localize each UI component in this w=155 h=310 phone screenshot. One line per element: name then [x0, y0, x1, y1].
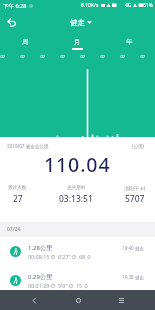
staticText: 4G: [125, 2, 132, 9]
staticText: 07/05: [20, 54, 25, 60]
button[interactable]: Home: [68, 290, 88, 310]
staticText: 19:40 健走: [122, 245, 145, 251]
staticText: 0.29公里: [28, 273, 52, 281]
staticText: 07/17: [80, 54, 85, 60]
button[interactable]: Back: [0, 11, 22, 33]
staticText: 6'27": [58, 253, 71, 260]
staticText: 年: [126, 38, 133, 46]
staticText: 月: [74, 38, 81, 46]
button[interactable]: Recents: [111, 290, 131, 310]
button[interactable]: 0.29公里: [0, 266, 155, 295]
staticText: 07/01: [0, 54, 5, 60]
staticText: 68: [79, 253, 86, 260]
staticText: 2019/07 健走总公里: [7, 143, 49, 149]
staticText: 下午 6:28: [3, 2, 27, 10]
button[interactable]: 年: [103, 33, 155, 52]
staticText: 00:08:15: [28, 253, 50, 260]
staticText: 消耗(千卡): [124, 185, 146, 191]
staticText: 周: [22, 38, 29, 46]
staticText: 健走: [70, 18, 85, 27]
staticText: 07/29: [140, 54, 145, 60]
staticText: 5707: [125, 193, 145, 205]
button[interactable]: Back: [24, 290, 44, 310]
button[interactable]: 月: [51, 33, 103, 52]
staticText: 累计次数: [8, 185, 27, 191]
staticText: 07/21: [100, 54, 105, 60]
staticText: 8.10K/s: [81, 2, 99, 9]
staticText: 03:13:51: [59, 193, 93, 205]
staticText: 110.04: [44, 151, 111, 178]
staticText: 总共用时: [67, 185, 86, 191]
staticText: 07/24: [7, 226, 21, 233]
staticText: 61%: [143, 2, 153, 9]
staticText: 5'0": [58, 282, 68, 289]
staticText: 27: [13, 193, 23, 205]
button[interactable]: 1.28公里: [0, 237, 155, 266]
staticText: 00:01:29: [28, 282, 50, 289]
staticText: 1.28公里: [28, 244, 52, 252]
staticText: 07/09: [40, 54, 45, 60]
staticText: (公里): [132, 143, 144, 149]
staticText: 19:38 健走: [122, 274, 145, 280]
staticText: 15: [76, 282, 83, 289]
staticText: 07/25: [120, 54, 125, 60]
button[interactable]: 周: [0, 33, 51, 52]
staticText: 07/13: [60, 54, 65, 60]
button[interactable]: 健走: [65, 15, 90, 30]
